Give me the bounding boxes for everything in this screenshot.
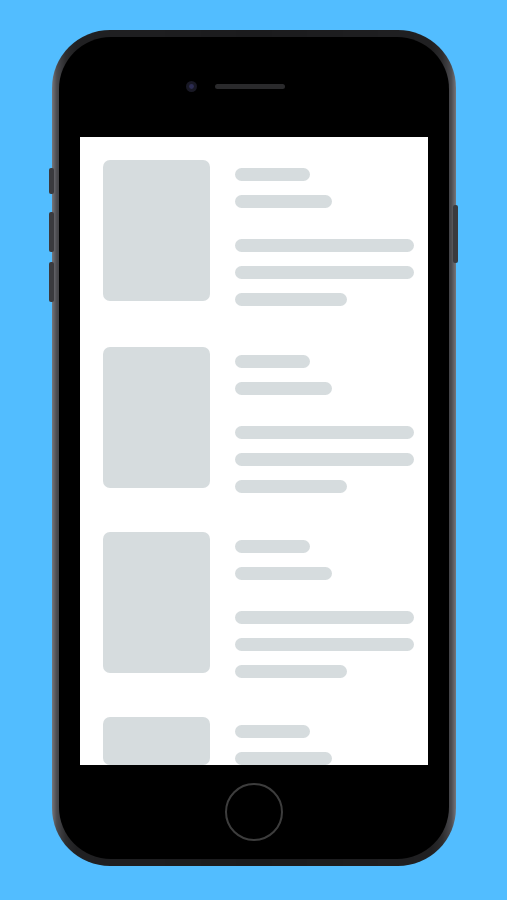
button[interactable] <box>103 160 414 306</box>
other: Mute switch <box>49 168 54 194</box>
other: Volume down <box>49 262 54 302</box>
other: Power <box>453 205 458 263</box>
button[interactable] <box>103 717 414 765</box>
button[interactable]: Home <box>225 783 283 841</box>
other: Volume up <box>49 212 54 252</box>
button[interactable] <box>103 347 414 493</box>
button[interactable] <box>103 532 414 678</box>
